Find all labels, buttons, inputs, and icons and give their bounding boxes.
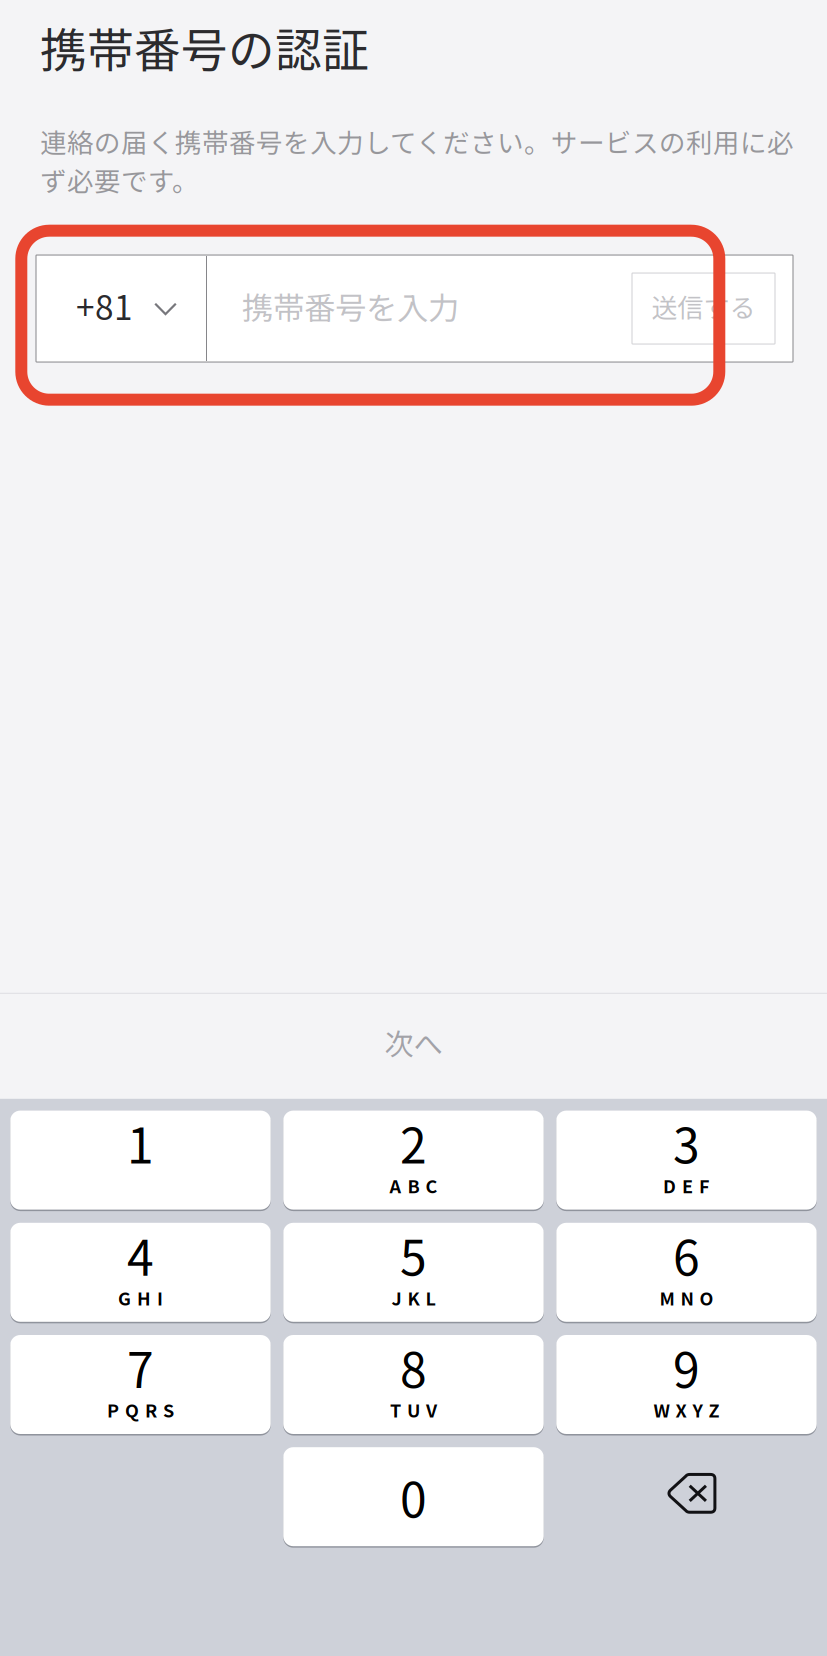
staticText: 2 [400, 1108, 427, 1177]
button[interactable]: 次へ [0, 994, 827, 1099]
staticText: 5 [400, 1220, 427, 1289]
button[interactable]: 7 [10, 1335, 271, 1434]
staticText: 3 [673, 1108, 700, 1177]
staticText: P Q R S [107, 1397, 174, 1423]
staticText: T U V [390, 1397, 437, 1423]
staticText: 0 [400, 1462, 427, 1531]
staticText: 携帯番号を入力 [242, 283, 459, 329]
staticText: 7 [127, 1332, 154, 1402]
staticText: 4 [127, 1220, 154, 1289]
staticText: 次へ [384, 1021, 442, 1064]
staticText: +81 [76, 281, 133, 330]
button[interactable]: 1 [10, 1111, 271, 1210]
staticText: 1 [127, 1108, 154, 1177]
button[interactable]: Delete [556, 1447, 817, 1546]
button[interactable]: 4 [10, 1223, 271, 1322]
button[interactable]: 送信する [632, 273, 775, 344]
button[interactable]: 9 [556, 1335, 817, 1434]
button[interactable]: Country code +81 [36, 256, 206, 361]
staticText: 連絡の届く携帯番号を入力してください。サービスの利用に必ず必要です。 [40, 122, 794, 199]
button[interactable]: 6 [556, 1223, 817, 1322]
staticText: D E F [663, 1172, 710, 1198]
staticText: G H I [118, 1284, 163, 1311]
staticText: 8 [400, 1332, 427, 1402]
button[interactable]: 8 [283, 1335, 544, 1434]
staticText: 9 [673, 1332, 700, 1402]
staticText: W X Y Z [653, 1397, 719, 1423]
staticText: 送信する [651, 287, 755, 325]
staticText: 6 [673, 1220, 700, 1289]
staticText: 携帯番号の認証 [40, 13, 369, 81]
staticText: A B C [389, 1172, 437, 1198]
button[interactable]: 2 [283, 1111, 544, 1210]
button[interactable]: 0 [283, 1447, 544, 1546]
button[interactable]: 5 [283, 1223, 544, 1322]
staticText: J K L [391, 1284, 435, 1311]
staticText: M N O [659, 1284, 713, 1311]
button[interactable]: 3 [556, 1111, 817, 1210]
